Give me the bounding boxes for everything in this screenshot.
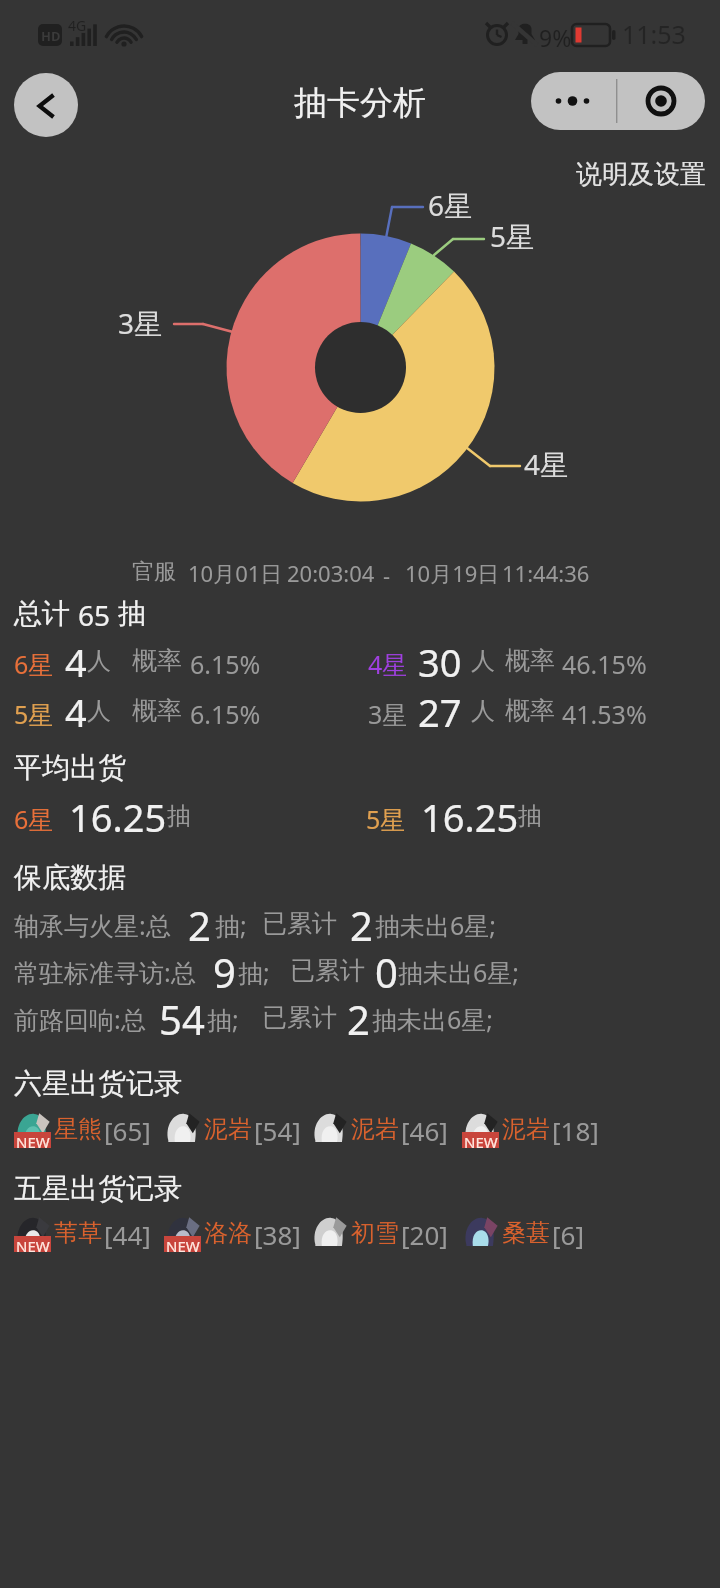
staticText: 4 xyxy=(65,636,87,688)
staticText: 0 xyxy=(375,945,398,999)
staticText: 抽未出6星; xyxy=(398,955,520,989)
staticText: 抽; xyxy=(207,1002,239,1036)
staticText: 10月01日 xyxy=(188,558,283,588)
staticText: 轴承与火星:总 xyxy=(14,908,171,942)
staticText: 人 xyxy=(471,696,495,726)
staticText: 11:53 xyxy=(622,17,686,51)
staticText: NEW xyxy=(464,1132,498,1148)
staticText: 初雪 xyxy=(351,1218,399,1248)
staticText: 9 xyxy=(213,945,236,999)
staticText: 概率 xyxy=(505,695,555,726)
button[interactable]: 说明及设置 xyxy=(576,158,706,191)
staticText: 5星 xyxy=(14,697,54,731)
staticText: 泥岩 xyxy=(204,1114,252,1144)
staticText: 桑葚 xyxy=(502,1218,550,1248)
staticText: 4G xyxy=(68,16,87,35)
staticText: 人 xyxy=(471,646,495,676)
staticText: 六星出货记录 xyxy=(14,1066,182,1101)
staticText: 6星 xyxy=(14,647,54,681)
staticText: NEW xyxy=(16,1132,50,1148)
staticText: 11:44:36 xyxy=(502,558,590,588)
staticText: 总计 xyxy=(14,596,70,631)
button[interactable]: NEW xyxy=(462,1111,593,1148)
staticText: 54 xyxy=(159,992,205,1046)
button[interactable]: 泥岩 xyxy=(311,1111,442,1148)
staticText: 9% xyxy=(539,22,572,53)
staticText: 41.53% xyxy=(562,697,647,731)
staticText: 概率 xyxy=(132,695,182,726)
staticText: [6] xyxy=(552,1217,584,1252)
staticText: 65 xyxy=(78,596,111,634)
staticText: 说明及设置 xyxy=(576,158,706,191)
button[interactable]: NEW xyxy=(164,1215,295,1252)
staticText: 前路回响:总 xyxy=(14,1002,146,1036)
staticText: 概率 xyxy=(132,645,182,676)
staticText: 3星 xyxy=(368,697,408,731)
button[interactable]: NEW xyxy=(14,1111,145,1148)
staticText: - xyxy=(383,560,391,590)
staticText: [20] xyxy=(401,1217,448,1252)
staticText: 人 xyxy=(87,646,111,676)
staticText: 已累计 xyxy=(262,1002,337,1033)
staticText: [65] xyxy=(104,1113,151,1148)
staticText: NEW xyxy=(16,1236,50,1252)
staticText: 洛洛 xyxy=(204,1218,252,1248)
staticText: 已累计 xyxy=(290,955,365,986)
staticText: 6星 xyxy=(428,186,473,224)
button[interactable]: Back xyxy=(14,73,78,137)
staticText: 抽未出6星; xyxy=(375,908,497,942)
staticText: 2 xyxy=(347,992,370,1046)
staticText: HD xyxy=(41,27,61,45)
staticText: 6.15% xyxy=(190,697,261,731)
staticText: 抽卡分析 xyxy=(294,82,426,124)
staticText: 泥岩 xyxy=(351,1114,399,1144)
staticText: 6.15% xyxy=(190,647,261,681)
button[interactable]: 泥岩 xyxy=(164,1111,295,1148)
staticText: 10月19日 xyxy=(405,558,500,588)
staticText: 4 xyxy=(65,686,87,738)
staticText: [38] xyxy=(254,1217,301,1252)
staticText: 4星 xyxy=(368,647,408,681)
button[interactable]: More options xyxy=(531,72,705,130)
staticText: 星熊 xyxy=(54,1114,102,1144)
staticText: 人 xyxy=(87,696,111,726)
button[interactable]: 初雪 xyxy=(311,1215,442,1252)
staticText: 概率 xyxy=(505,645,555,676)
staticText: 4星 xyxy=(524,445,569,483)
staticText: 平均出货 xyxy=(14,750,126,785)
staticText: 30 xyxy=(418,636,462,688)
staticText: 16.25 xyxy=(69,791,167,843)
staticText: 抽 xyxy=(118,596,146,631)
staticText: 保底数据 xyxy=(14,860,126,895)
staticText: 苇草 xyxy=(54,1218,102,1248)
staticText: 2 xyxy=(188,898,211,952)
staticText: [44] xyxy=(104,1217,151,1252)
staticText: 已累计 xyxy=(262,908,337,939)
staticText: 20:03:04 xyxy=(287,558,375,588)
staticText: [54] xyxy=(254,1113,301,1148)
staticText: NEW xyxy=(166,1236,200,1252)
staticText: 46.15% xyxy=(562,647,647,681)
staticText: 官服 xyxy=(132,558,176,586)
staticText: 3星 xyxy=(118,304,163,342)
staticText: 2 xyxy=(350,898,373,952)
staticText: 6星 xyxy=(14,802,54,836)
staticText: 5星 xyxy=(366,802,406,836)
staticText: 泥岩 xyxy=(502,1114,550,1144)
button[interactable]: NEW xyxy=(14,1215,145,1252)
staticText: 16.25 xyxy=(421,791,519,843)
staticText: 27 xyxy=(418,686,462,738)
button[interactable]: 桑葚 xyxy=(462,1215,584,1252)
staticText: 抽 xyxy=(167,801,191,831)
staticText: 常驻标准寻访:总 xyxy=(14,955,196,989)
staticText: 抽未出6星; xyxy=(372,1002,494,1036)
staticText: 抽; xyxy=(215,908,247,942)
staticText: [46] xyxy=(401,1113,448,1148)
staticText: [18] xyxy=(552,1113,599,1148)
staticText: 5星 xyxy=(490,217,535,255)
staticText: 抽 xyxy=(518,801,542,831)
staticText: 五星出货记录 xyxy=(14,1171,182,1206)
staticText: 抽; xyxy=(238,955,270,989)
